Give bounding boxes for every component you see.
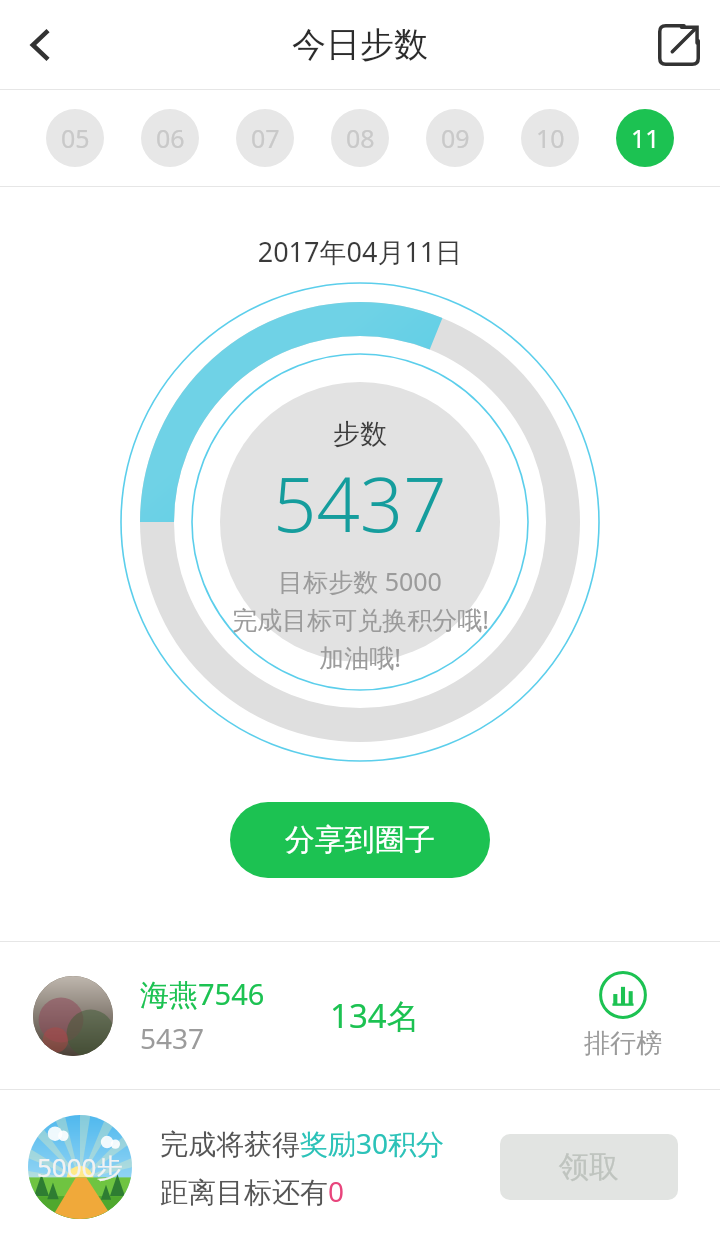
button[interactable]: 11 — [616, 109, 674, 167]
staticText: 今日步数 — [292, 23, 428, 66]
staticText: 05 — [61, 121, 90, 155]
button[interactable]: 08 — [331, 109, 389, 167]
button[interactable]: 07 — [236, 109, 294, 167]
staticText: 5000步 — [37, 1149, 123, 1185]
button[interactable]: 05 — [46, 109, 104, 167]
staticText: 07 — [251, 121, 280, 155]
staticText: 步数 — [333, 417, 387, 451]
button[interactable]: 领取 — [500, 1134, 678, 1200]
staticText: 06 — [156, 121, 185, 155]
staticText: 加油哦! — [319, 640, 401, 674]
staticText: 134名 — [330, 993, 420, 1038]
staticText: 海燕7546 — [140, 974, 265, 1014]
staticText: 目标步数 5000 — [278, 564, 442, 598]
button[interactable]: 排行榜 — [584, 971, 662, 1060]
staticText: 5437 — [140, 1019, 205, 1057]
button[interactable]: 10 — [521, 109, 579, 167]
button[interactable]: 09 — [426, 109, 484, 167]
button[interactable]: Back — [8, 13, 72, 77]
staticText: 11 — [631, 121, 660, 155]
button[interactable]: Share — [648, 14, 710, 76]
staticText: 08 — [346, 121, 375, 155]
staticText: 分享到圈子 — [285, 821, 435, 859]
staticText: 2017年04月11日 — [0, 233, 720, 270]
staticText: 距离目标还有0 — [160, 1172, 345, 1210]
staticText: 10 — [536, 121, 565, 155]
staticText: 5437 — [273, 451, 447, 555]
staticText: 排行榜 — [584, 1027, 662, 1060]
button[interactable]: 海燕7546 — [0, 942, 720, 1089]
staticText: 完成将获得奖励30积分 — [160, 1124, 445, 1162]
button[interactable]: 06 — [141, 109, 199, 167]
staticText: 领取 — [559, 1148, 619, 1186]
staticText: 完成目标可兑换积分哦! — [232, 602, 489, 636]
button[interactable]: 分享到圈子 — [230, 802, 490, 878]
staticText: 09 — [441, 121, 470, 155]
